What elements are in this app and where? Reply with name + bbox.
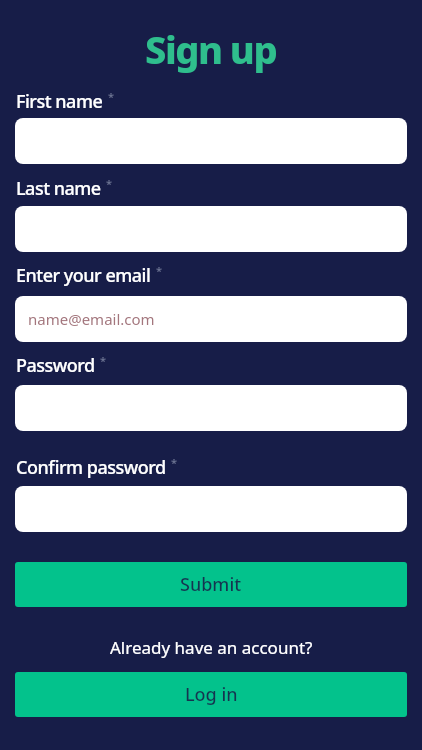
staticText: Last name [16, 176, 101, 201]
button[interactable] [15, 206, 407, 252]
staticText: Confirm password [16, 455, 166, 480]
button[interactable]: name@email.com [15, 296, 407, 342]
staticText: Enter your email [16, 263, 151, 288]
button[interactable]: Submit [15, 562, 407, 607]
staticText: name@email.com [28, 309, 155, 329]
staticText: * [100, 353, 107, 368]
staticText: Password [16, 353, 95, 378]
button[interactable] [15, 118, 407, 164]
button[interactable] [15, 486, 407, 532]
staticText: * [106, 176, 113, 191]
staticText: * [108, 89, 115, 104]
staticText: Log in [185, 682, 238, 707]
staticText: Sign up [145, 23, 277, 75]
staticText: * [171, 455, 178, 470]
button[interactable]: Already have an account? [110, 636, 313, 659]
staticText: Submit [180, 572, 242, 597]
staticText: * [156, 263, 163, 278]
staticText: First name [16, 89, 103, 114]
button[interactable] [15, 385, 407, 431]
button[interactable]: Log in [15, 672, 407, 717]
